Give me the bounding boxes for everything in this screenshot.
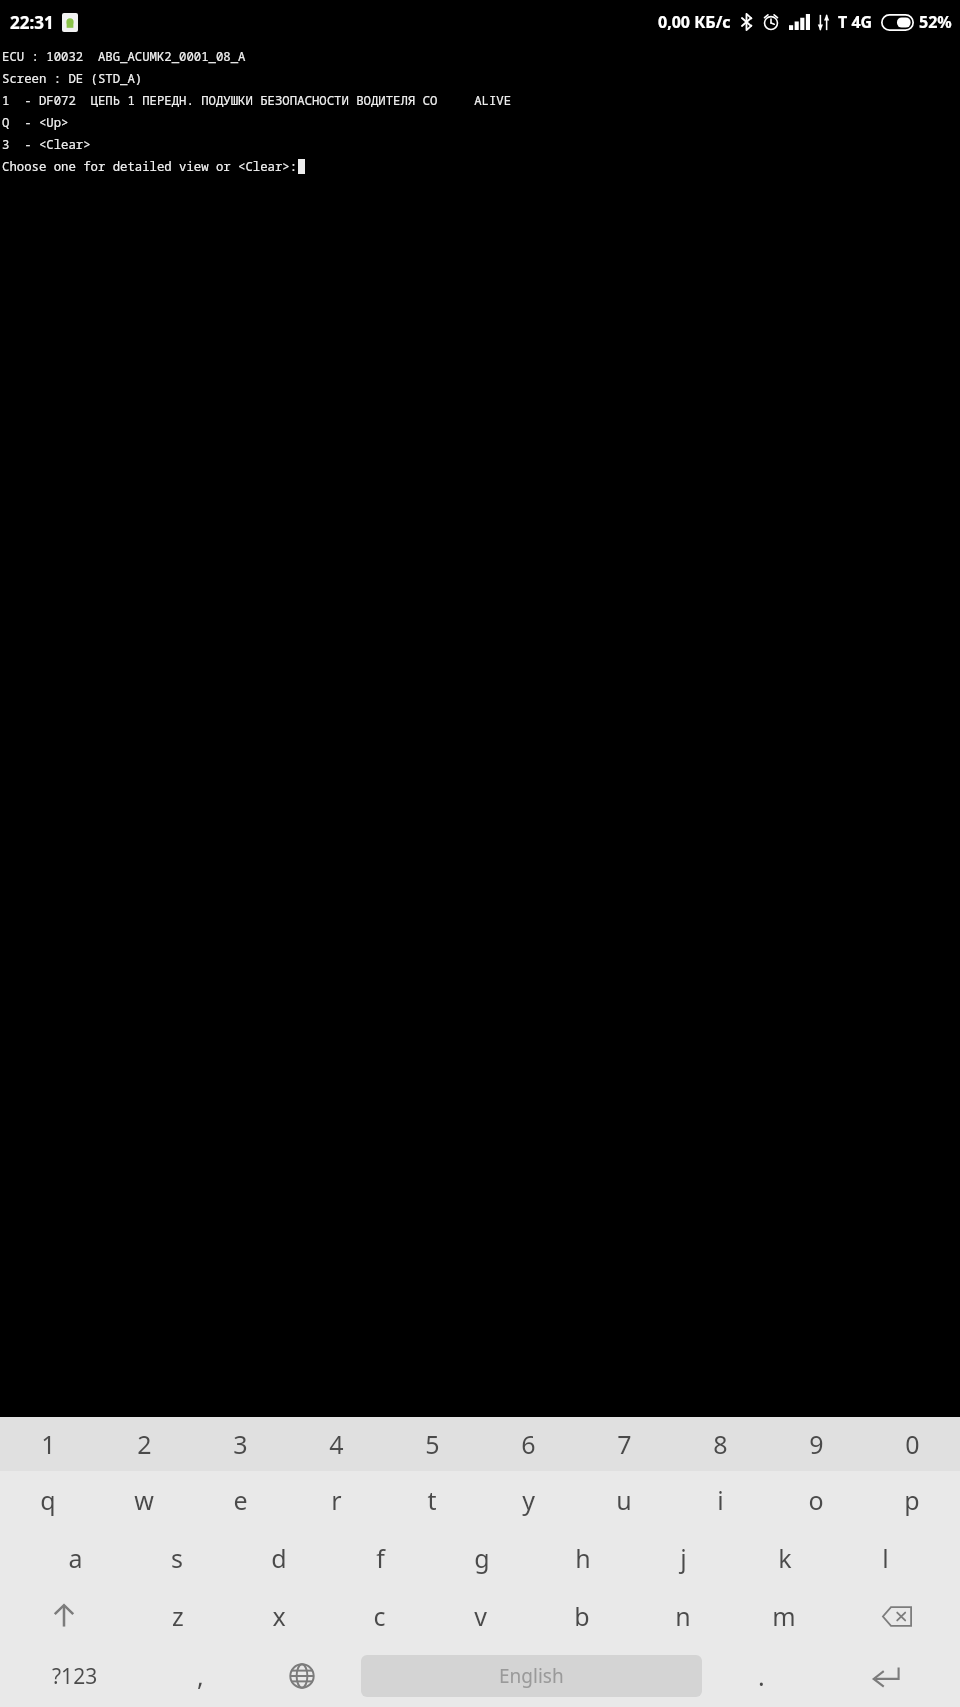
staticText: g xyxy=(474,1541,490,1575)
button[interactable]: English xyxy=(361,1655,702,1697)
staticText: t xyxy=(427,1483,437,1517)
button[interactable]: m xyxy=(733,1587,834,1645)
button[interactable]: 9 xyxy=(768,1417,864,1471)
staticText: 22:31 xyxy=(10,11,54,34)
staticText: p xyxy=(904,1483,920,1517)
staticText: ECU : 10032 ABG_ACUMK2_0001_08_A xyxy=(2,48,246,65)
staticText: x xyxy=(272,1599,286,1633)
button[interactable]: x xyxy=(228,1587,329,1645)
staticText: u xyxy=(616,1483,632,1517)
staticText: 5 xyxy=(425,1427,440,1461)
staticText: 8 xyxy=(713,1427,728,1461)
staticText: b xyxy=(574,1599,590,1633)
staticText: d xyxy=(271,1541,287,1575)
button[interactable]: z xyxy=(127,1587,228,1645)
button[interactable]: 5 xyxy=(384,1417,480,1471)
button[interactable]: n xyxy=(632,1587,733,1645)
staticText: i xyxy=(717,1483,724,1517)
staticText: l xyxy=(882,1541,889,1575)
button[interactable]: d xyxy=(228,1529,330,1587)
staticText: a xyxy=(68,1541,83,1575)
staticText: w xyxy=(134,1483,154,1517)
button[interactable]: y xyxy=(480,1471,576,1529)
button[interactable]: 1 xyxy=(0,1417,96,1471)
staticText: ?123 xyxy=(52,1662,98,1691)
button[interactable]: u xyxy=(576,1471,672,1529)
staticText: T 4G xyxy=(838,11,873,33)
button[interactable]: , xyxy=(149,1645,251,1707)
button[interactable]: Change language xyxy=(251,1645,353,1707)
button[interactable]: i xyxy=(672,1471,768,1529)
button[interactable]: 7 xyxy=(576,1417,672,1471)
staticText: v xyxy=(474,1599,487,1633)
button[interactable]: r xyxy=(288,1471,384,1529)
button[interactable]: Shift xyxy=(0,1587,127,1645)
staticText: Q - <Up> xyxy=(2,114,69,131)
button[interactable]: 4 xyxy=(288,1417,384,1471)
staticText: English xyxy=(499,1663,564,1689)
button[interactable]: 6 xyxy=(480,1417,576,1471)
button[interactable]: e xyxy=(192,1471,288,1529)
staticText: 7 xyxy=(617,1427,632,1461)
button[interactable]: ?123 xyxy=(0,1645,149,1707)
button[interactable]: f xyxy=(330,1529,431,1587)
staticText: . xyxy=(758,1659,765,1693)
staticText: n xyxy=(675,1599,691,1633)
button[interactable]: 3 xyxy=(192,1417,288,1471)
staticText: q xyxy=(40,1483,56,1517)
staticText: 0,00 КБ/с xyxy=(658,11,731,33)
button[interactable]: a xyxy=(24,1529,126,1587)
staticText: Screen : DE (STD_A) xyxy=(2,70,143,87)
button[interactable]: g xyxy=(431,1529,532,1587)
staticText: o xyxy=(808,1483,824,1517)
button[interactable]: j xyxy=(633,1529,734,1587)
staticText: 4 xyxy=(329,1427,344,1461)
button[interactable]: h xyxy=(532,1529,633,1587)
button[interactable]: b xyxy=(531,1587,632,1645)
button[interactable]: q xyxy=(0,1471,96,1529)
staticText: k xyxy=(778,1541,792,1575)
button[interactable]: Enter xyxy=(812,1645,960,1707)
staticText: e xyxy=(233,1483,248,1517)
button[interactable]: v xyxy=(430,1587,531,1645)
staticText: 6 xyxy=(521,1427,536,1461)
button[interactable]: 8 xyxy=(672,1417,768,1471)
button[interactable]: s xyxy=(126,1529,228,1587)
button[interactable]: p xyxy=(864,1471,960,1529)
staticText: 3 xyxy=(233,1427,248,1461)
staticText: c xyxy=(373,1599,386,1633)
staticText: h xyxy=(575,1541,591,1575)
staticText: , xyxy=(197,1659,204,1693)
staticText: y xyxy=(522,1483,535,1517)
staticText: z xyxy=(172,1599,184,1633)
button[interactable]: l xyxy=(835,1529,936,1587)
button[interactable]: t xyxy=(384,1471,480,1529)
staticText: 0 xyxy=(905,1427,920,1461)
staticText: Choose one for detailed view or <Clear>: xyxy=(2,158,298,175)
staticText: r xyxy=(331,1483,342,1517)
staticText: m xyxy=(772,1599,796,1633)
staticText: s xyxy=(171,1541,183,1575)
button[interactable]: . xyxy=(710,1645,812,1707)
button[interactable]: c xyxy=(329,1587,430,1645)
staticText: 9 xyxy=(809,1427,824,1461)
button[interactable]: w xyxy=(96,1471,192,1529)
button[interactable]: Backspace xyxy=(834,1587,960,1645)
button[interactable]: o xyxy=(768,1471,864,1529)
staticText: 3 - <Clear> xyxy=(2,136,91,153)
button[interactable]: k xyxy=(734,1529,835,1587)
staticText: 1 - DF072 ЦЕПЬ 1 ПЕРЕДН. ПОДУШКИ БЕЗОПАС… xyxy=(2,92,512,109)
staticText: 1 xyxy=(41,1427,56,1461)
staticText: j xyxy=(680,1541,687,1575)
staticText: f xyxy=(376,1541,385,1575)
button[interactable]: 2 xyxy=(96,1417,192,1471)
button[interactable]: 0 xyxy=(864,1417,960,1471)
staticText: 2 xyxy=(137,1427,152,1461)
staticText: 52% xyxy=(919,11,952,33)
